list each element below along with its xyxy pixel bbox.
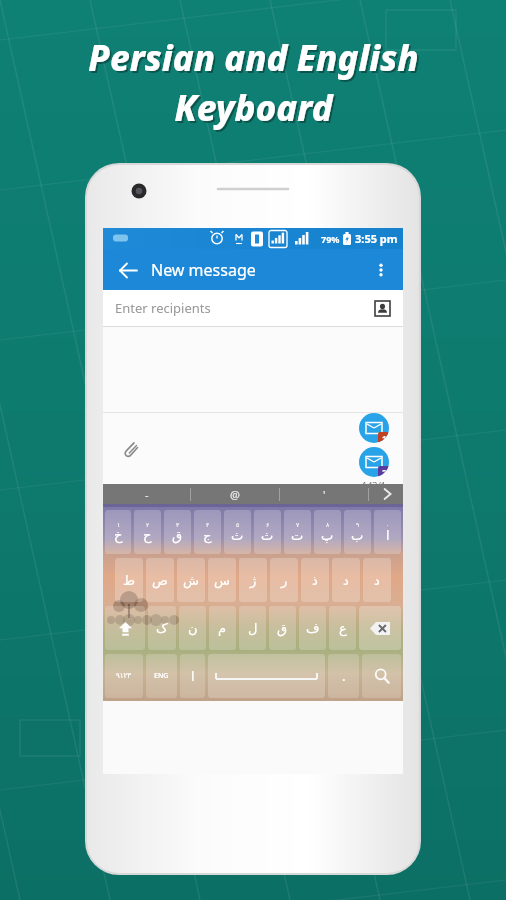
staticText: پ: [321, 528, 334, 543]
staticText: ق: [172, 528, 183, 543]
staticText: 79%: [321, 233, 340, 245]
staticText: ن: [188, 621, 198, 636]
staticText: ۸: [326, 521, 330, 528]
button[interactable]: ع: [329, 606, 356, 650]
staticText: ت: [291, 528, 304, 543]
staticText: ۱: [117, 521, 121, 528]
button[interactable]: ش: [177, 558, 205, 602]
staticText: ۰: [386, 521, 390, 528]
button[interactable]: Send SIM 2: [359, 447, 389, 477]
staticText: ب: [351, 528, 364, 543]
button[interactable]: -: [103, 484, 190, 504]
button[interactable]: ک: [148, 606, 176, 650]
staticText: -: [145, 487, 149, 502]
staticText: ج: [203, 528, 212, 543]
button[interactable]: ط: [115, 558, 143, 602]
button[interactable]: ۹۱۲۳: [105, 654, 143, 698]
staticText: ص: [152, 573, 168, 588]
button[interactable]: س: [208, 558, 236, 602]
staticText: ۳: [176, 521, 180, 528]
staticText: Persian and English: [88, 34, 419, 82]
staticText: .: [342, 667, 346, 685]
staticText: ق: [277, 621, 288, 636]
button[interactable]: Space: [208, 654, 325, 698]
button[interactable]: ': [280, 484, 368, 504]
button[interactable]: د: [332, 558, 360, 602]
button[interactable]: More suggestions: [369, 484, 403, 504]
staticText: ENG: [154, 671, 169, 681]
button[interactable]: Shift: [105, 606, 145, 650]
button[interactable]: Enter recipients: [103, 290, 403, 326]
button[interactable]: Send SIM 1: [359, 413, 389, 443]
button[interactable]: ا: [180, 654, 205, 698]
button[interactable]: @: [191, 484, 279, 504]
button[interactable]: م: [209, 606, 236, 650]
staticText: ا: [386, 528, 390, 543]
button[interactable]: ن: [179, 606, 206, 650]
button[interactable]: ۴: [194, 510, 221, 554]
button[interactable]: ف: [299, 606, 326, 650]
staticText: 2: [382, 467, 387, 477]
button[interactable]: Backspace: [359, 606, 401, 650]
staticText: Keyboard: [176, 86, 335, 134]
button[interactable]: د: [363, 558, 391, 602]
button[interactable]: ص: [146, 558, 174, 602]
staticText: ': [323, 487, 326, 502]
button[interactable]: ۹: [344, 510, 371, 554]
staticText: د: [343, 573, 349, 588]
button[interactable]: Search: [362, 654, 401, 698]
staticText: ژ: [250, 573, 257, 588]
button[interactable]: ل: [239, 606, 266, 650]
button[interactable]: ۶: [254, 510, 281, 554]
staticText: @: [230, 487, 240, 502]
button[interactable]: ۲: [134, 510, 161, 554]
button[interactable]: More options: [365, 254, 397, 286]
staticText: ۴: [206, 521, 210, 528]
staticText: ا: [191, 669, 195, 684]
staticText: ۶: [266, 521, 270, 528]
staticText: ک: [156, 621, 168, 636]
staticText: ۹۱۲۳: [116, 672, 132, 680]
staticText: Persian and English: [90, 36, 421, 84]
staticText: ث: [231, 528, 244, 543]
staticText: ع: [339, 621, 347, 636]
button[interactable]: ۸: [314, 510, 341, 554]
button[interactable]: ژ: [239, 558, 267, 602]
staticText: ۲: [146, 521, 150, 528]
button[interactable]: Pick contact: [371, 297, 393, 319]
staticText: 3:55 pm: [355, 231, 398, 246]
staticText: 143/1: [362, 479, 386, 484]
staticText: س: [214, 573, 230, 588]
staticText: ۹: [356, 521, 360, 528]
button[interactable]: ۷: [284, 510, 311, 554]
staticText: خ: [114, 528, 123, 543]
staticText: ف: [306, 621, 320, 636]
staticText: ذ: [312, 573, 318, 588]
staticText: ۵: [236, 521, 240, 528]
staticText: ط: [123, 573, 136, 588]
staticText: ر: [281, 573, 288, 588]
staticText: ث: [261, 528, 274, 543]
button[interactable]: ۰: [374, 510, 401, 554]
staticText: ش: [183, 573, 199, 588]
button[interactable]: ۵: [224, 510, 251, 554]
staticText: ل: [248, 621, 258, 636]
button[interactable]: ۳: [164, 510, 191, 554]
button[interactable]: ENG: [146, 654, 177, 698]
button[interactable]: .: [328, 654, 359, 698]
staticText: ح: [143, 528, 152, 543]
staticText: Keyboard: [174, 84, 333, 132]
button[interactable]: ر: [270, 558, 298, 602]
staticText: 1: [382, 433, 387, 443]
staticText: م: [218, 621, 227, 636]
staticText: د: [374, 573, 380, 588]
staticText: New message: [151, 259, 256, 281]
button[interactable]: ق: [269, 606, 296, 650]
button[interactable]: ذ: [301, 558, 329, 602]
button[interactable]: Attach: [115, 434, 145, 464]
button[interactable]: Back: [111, 254, 143, 286]
staticText: ۷: [296, 521, 300, 528]
button[interactable]: ۱: [105, 510, 131, 554]
staticText: Enter recipients: [115, 299, 211, 317]
